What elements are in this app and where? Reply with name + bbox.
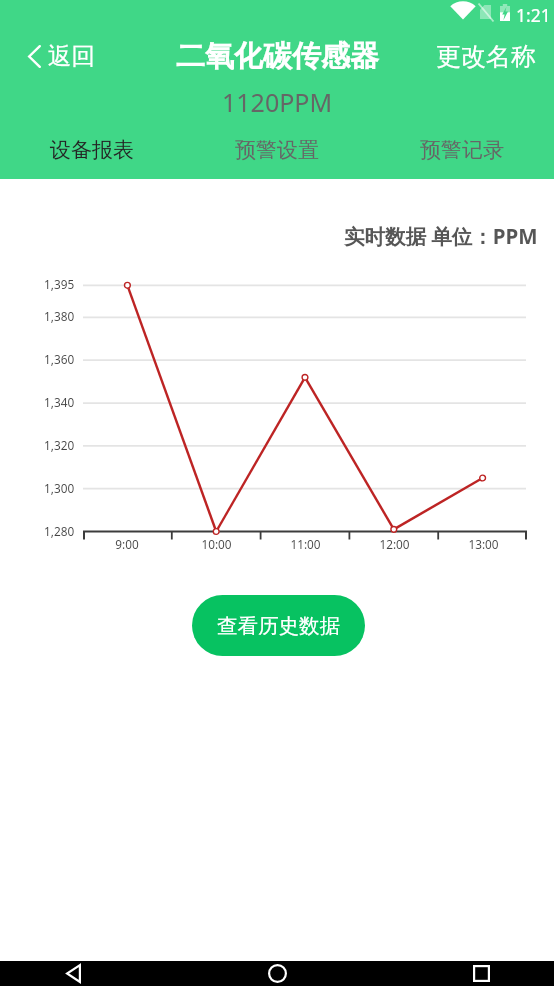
staticText: 预警设置	[235, 137, 319, 163]
staticText: 13:00	[468, 536, 499, 552]
button[interactable]: Recents	[441, 961, 521, 986]
button[interactable]: Back	[33, 961, 113, 986]
staticText: 实时数据 单位：PPM	[344, 222, 538, 250]
staticText: 更改名称	[436, 41, 536, 72]
staticText: 二氧化碳传感器	[176, 38, 379, 75]
staticText: 查看历史数据	[217, 613, 340, 639]
staticText: 1,395	[44, 276, 75, 292]
staticText: 12:00	[379, 536, 410, 552]
staticText: 1:21	[516, 3, 551, 27]
button[interactable]: 查看历史数据	[192, 595, 365, 656]
button[interactable]: 设备报表	[0, 131, 184, 169]
staticText: 1120PPM	[222, 85, 333, 119]
staticText: 9:00	[115, 536, 139, 552]
staticText: 1,320	[44, 437, 75, 453]
staticText: 11:00	[290, 536, 321, 552]
button[interactable]: Home	[237, 961, 317, 986]
button[interactable]: 更改名称	[422, 31, 554, 81]
staticText: 设备报表	[50, 137, 134, 163]
staticText: 1,300	[44, 480, 75, 496]
staticText: 1,380	[44, 308, 75, 324]
staticText: 返回	[48, 41, 95, 71]
staticText: 1,280	[44, 523, 75, 539]
staticText: 预警记录	[420, 137, 504, 163]
staticText: 1,360	[44, 351, 75, 367]
button[interactable]: 返回	[0, 31, 109, 81]
staticText: 1,340	[44, 394, 75, 410]
button[interactable]: 预警记录	[369, 131, 554, 169]
staticText: 10:00	[201, 536, 232, 552]
button[interactable]: 预警设置	[184, 131, 369, 169]
